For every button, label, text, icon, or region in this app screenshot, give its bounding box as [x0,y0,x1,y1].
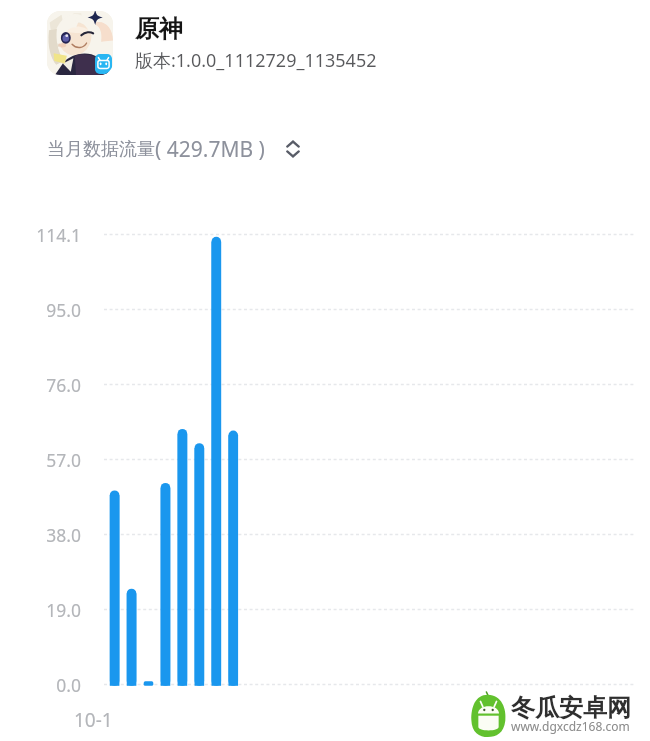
staticText: 版本:1.0.0_1112729_1135452 [135,48,377,73]
staticText: 10-1 [74,707,113,733]
staticText: www.dgxcdz168.com [511,718,630,734]
staticText: 原神 [135,14,183,44]
button[interactable]: 当月数据流量 [47,135,301,164]
button[interactable]: 原神 app icon [0,0,650,86]
staticText: 95.0 [20,298,81,322]
staticText: 114.1 [20,223,81,247]
staticText: 冬瓜安卓网 [511,693,631,723]
button[interactable]: Change range [285,139,301,159]
staticText: 76.0 [20,373,81,397]
staticText: 38.0 [20,523,81,547]
staticText: 19.0 [20,598,81,622]
staticText: 57.0 [20,448,81,472]
staticText: ( 429.7MB ) [155,135,265,164]
other: 原神 app icon [47,11,113,75]
staticText: 当月数据流量 [47,138,155,161]
staticText: 0.0 [20,673,81,697]
